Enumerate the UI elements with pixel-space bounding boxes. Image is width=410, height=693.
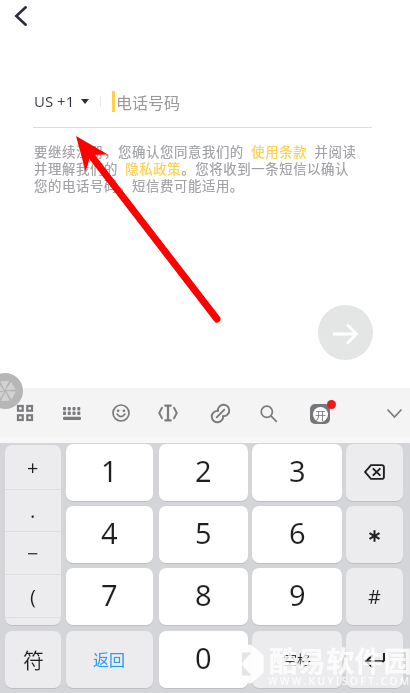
button[interactable]: Back bbox=[0, 0, 42, 37]
button[interactable]: Search bbox=[246, 391, 290, 435]
button[interactable]: * bbox=[346, 506, 403, 563]
button[interactable]: 返回 bbox=[66, 631, 153, 688]
button[interactable]: # bbox=[346, 568, 403, 625]
staticText: ( bbox=[30, 583, 36, 610]
staticText: 8 bbox=[195, 575, 212, 614]
staticText: 9 bbox=[289, 575, 306, 614]
button[interactable]: US +1 bbox=[34, 91, 89, 111]
button[interactable]: 0 bbox=[159, 631, 248, 688]
button[interactable]: Text cursor bbox=[146, 391, 190, 435]
staticText: 返回 bbox=[93, 647, 126, 670]
staticText: 1 bbox=[101, 451, 118, 490]
staticText: 4 bbox=[101, 513, 118, 552]
staticText: 5 bbox=[195, 513, 212, 552]
button[interactable]: Next bbox=[318, 305, 373, 360]
staticText: . bbox=[30, 497, 36, 524]
button[interactable]: 2 bbox=[159, 444, 248, 501]
staticText: 空格 bbox=[283, 649, 311, 669]
button[interactable]: 3 bbox=[252, 444, 342, 501]
button[interactable]: 1 bbox=[66, 444, 153, 501]
button[interactable]: Backspace bbox=[346, 444, 403, 501]
staticText: 要继续注册，您确认您同意我们的 使用条款 并阅读 并理解我们的 隐私政策。您将收… bbox=[34, 141, 357, 195]
button[interactable]: 9 bbox=[252, 568, 342, 625]
button[interactable]: Enter bbox=[346, 631, 403, 688]
staticText: US +1 bbox=[34, 91, 75, 111]
staticText: − bbox=[27, 540, 39, 567]
staticText: 2 bbox=[195, 451, 212, 490]
staticText: # bbox=[368, 583, 381, 610]
button[interactable]: 6 bbox=[252, 506, 342, 563]
button[interactable]: 5 bbox=[159, 506, 248, 563]
staticText: 7 bbox=[101, 575, 118, 614]
button[interactable]: Collapse keyboard bbox=[372, 391, 410, 435]
button[interactable]: 8 bbox=[159, 568, 248, 625]
staticText: 3 bbox=[289, 451, 306, 490]
button[interactable]: − bbox=[5, 532, 61, 574]
staticText: 酷易软件园 bbox=[269, 640, 410, 681]
button[interactable]: 7 bbox=[66, 568, 153, 625]
button[interactable]: 空格 bbox=[252, 631, 342, 688]
button[interactable]: . bbox=[5, 490, 61, 531]
staticText: 6 bbox=[289, 513, 306, 552]
staticText: 开 bbox=[315, 407, 326, 422]
button[interactable]: + bbox=[5, 445, 61, 489]
staticText: 电话号码 bbox=[116, 90, 181, 113]
button[interactable]: Attach bbox=[198, 391, 242, 435]
button[interactable]: Emoji bbox=[99, 391, 143, 435]
button[interactable]: Sticker grid bbox=[3, 391, 47, 435]
staticText: 符 bbox=[23, 644, 44, 674]
staticText: + bbox=[27, 454, 39, 481]
button[interactable]: Input method bbox=[299, 391, 343, 435]
button[interactable]: 4 bbox=[66, 506, 153, 563]
button[interactable]: Keyboard layout bbox=[50, 391, 94, 435]
button[interactable]: 符 key bbox=[5, 631, 61, 688]
button[interactable]: ( bbox=[5, 575, 61, 617]
staticText: WWW.KUYISOFT.COM bbox=[268, 674, 410, 688]
staticText: 0 bbox=[195, 638, 212, 677]
